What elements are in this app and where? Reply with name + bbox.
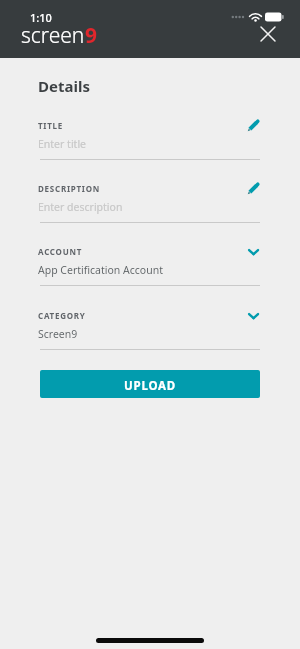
button[interactable]: Edit TITLE bbox=[242, 115, 264, 137]
staticText: Enter title bbox=[38, 137, 87, 151]
staticText: TITLE bbox=[38, 120, 64, 131]
staticText: CATEGORY bbox=[38, 310, 86, 321]
staticText: Enter description bbox=[38, 200, 123, 214]
staticText: 9 bbox=[85, 21, 98, 50]
staticText: Details bbox=[38, 76, 90, 96]
staticText: App Certification Account bbox=[38, 263, 163, 277]
staticText: screen bbox=[21, 21, 85, 50]
button[interactable]: Select CATEGORY bbox=[242, 305, 264, 327]
staticText: ACCOUNT bbox=[38, 246, 83, 257]
staticText: DESCRIPTION bbox=[38, 183, 101, 194]
button[interactable]: Select ACCOUNT bbox=[242, 241, 264, 263]
staticText: 1:10 bbox=[30, 10, 52, 25]
staticText: Screen9 bbox=[38, 327, 78, 341]
button[interactable]: Close bbox=[252, 18, 284, 50]
button[interactable]: Edit DESCRIPTION bbox=[242, 178, 264, 200]
staticText: UPLOAD bbox=[124, 378, 177, 394]
button[interactable]: UPLOAD bbox=[40, 370, 260, 398]
